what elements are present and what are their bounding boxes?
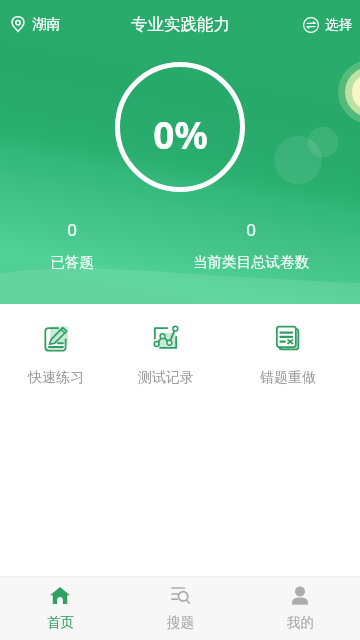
staticText: 0 [67, 218, 77, 241]
staticText: 专业实践能力 [131, 14, 230, 35]
staticText: 首页 [47, 614, 74, 631]
staticText: 0% [153, 109, 208, 159]
button[interactable]: 错题重做 [243, 313, 333, 397]
button[interactable]: 测试记录 [121, 313, 211, 397]
staticText: 选择 [325, 16, 352, 33]
staticText: 湖南 [32, 15, 61, 33]
button[interactable]: 湖南 [0, 7, 71, 41]
button[interactable]: 快速练习 [11, 313, 101, 397]
staticText: 我的 [287, 614, 314, 631]
button[interactable]: 首页 [0, 577, 120, 640]
staticText: 错题重做 [260, 369, 316, 387]
button[interactable]: 选择 [293, 8, 360, 41]
staticText: 已答题 [50, 253, 94, 271]
button[interactable]: 我的 [240, 577, 360, 640]
button[interactable]: 搜题 [120, 577, 240, 640]
staticText: 0 [246, 218, 256, 241]
staticText: 搜题 [167, 614, 194, 631]
staticText: 测试记录 [138, 369, 194, 387]
staticText: 当前类目总试卷数 [193, 253, 309, 271]
staticText: 快速练习 [28, 369, 84, 387]
